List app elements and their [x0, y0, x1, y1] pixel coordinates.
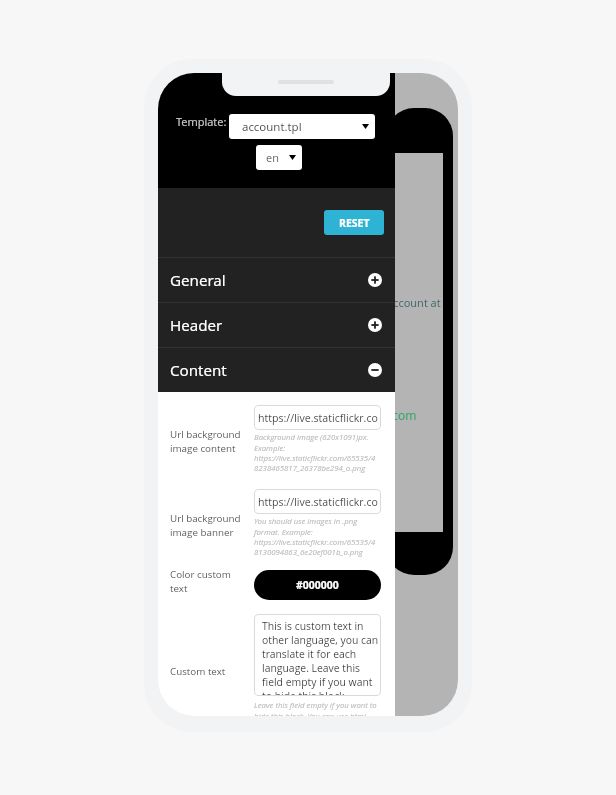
staticText: Create an account at	[335, 295, 441, 310]
staticText: General	[170, 270, 226, 291]
staticText: Leave this field empty if you wont to hi…	[254, 700, 377, 716]
other: Collapse section	[368, 363, 382, 377]
button[interactable]: Content	[158, 348, 395, 392]
other: Expand section	[368, 318, 382, 332]
staticText: #000000	[296, 578, 339, 592]
staticText: Content	[170, 360, 227, 381]
button[interactable]: https://live.staticflickr.co	[254, 405, 381, 430]
button[interactable]: #000000	[254, 570, 381, 600]
button[interactable]: RESET	[324, 210, 384, 235]
staticText: flickr.com	[362, 407, 417, 423]
other: Expand section	[368, 273, 382, 287]
staticText: This is custom text in other language, y…	[262, 619, 380, 696]
button[interactable]: account.tpl	[229, 114, 375, 139]
staticText: Template:	[176, 114, 227, 129]
staticText: You should use images in .png format. Ex…	[254, 516, 376, 557]
staticText: Background image (620x1091)px. Example: …	[254, 432, 376, 473]
staticText: RESET	[339, 216, 370, 230]
staticText: https://live.staticflickr.co	[258, 411, 378, 425]
staticText: https://live.staticflickr.co	[258, 495, 378, 509]
staticText: Color custom text	[170, 568, 231, 595]
staticText: Url background image content	[170, 428, 241, 455]
button[interactable]: Header	[158, 303, 395, 347]
staticText: Custom text	[170, 665, 226, 678]
button[interactable]: https://live.staticflickr.co	[254, 489, 381, 514]
staticText: Header	[170, 315, 223, 336]
button[interactable]: en	[256, 145, 302, 170]
staticText: account.tpl	[242, 119, 302, 135]
button[interactable]: General	[158, 258, 395, 302]
staticText: Url background image banner	[170, 512, 241, 539]
button[interactable]: This is custom text in other language, y…	[254, 614, 381, 696]
staticText: en	[266, 150, 279, 165]
